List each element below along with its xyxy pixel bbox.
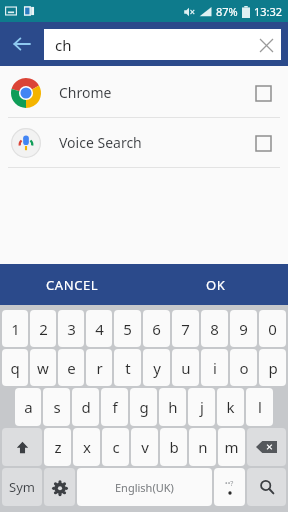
button[interactable]: h — [159, 388, 186, 426]
staticText: h — [168, 397, 178, 417]
button[interactable]: t — [114, 349, 141, 386]
button[interactable]: g — [130, 388, 157, 426]
button[interactable]: Voice Search — [0, 118, 288, 167]
button[interactable]: Backspace — [247, 428, 286, 466]
button[interactable]: Select Voice Search — [246, 126, 280, 160]
staticText: d — [81, 397, 91, 417]
button[interactable]: d — [72, 388, 99, 426]
staticText: f — [112, 397, 118, 417]
button[interactable]: q — [2, 349, 28, 386]
staticText: s — [53, 397, 61, 417]
staticText: r — [96, 358, 103, 378]
button[interactable]: o — [230, 349, 257, 386]
button[interactable]: z — [44, 428, 71, 466]
staticText: p — [268, 358, 278, 378]
button[interactable]: Select Chrome — [246, 76, 280, 110]
button[interactable]: ch — [44, 29, 281, 60]
staticText: 5 — [123, 319, 132, 339]
staticText: x — [83, 437, 91, 457]
button[interactable]: Chrome — [0, 68, 288, 117]
button[interactable]: e — [58, 349, 84, 386]
staticText: u — [181, 358, 191, 378]
staticText: j — [200, 397, 204, 417]
staticText: t — [125, 358, 131, 378]
staticText: 8 — [210, 319, 219, 339]
staticText: ••? — [225, 479, 234, 489]
staticText: e — [67, 358, 76, 378]
button[interactable]: m — [218, 428, 245, 466]
button[interactable]: a — [15, 388, 41, 426]
button[interactable]: 1 — [2, 310, 28, 347]
staticText: 2 — [39, 319, 48, 339]
staticText: 13:32 — [254, 4, 283, 19]
staticText: v — [141, 437, 149, 457]
button[interactable]: 4 — [86, 310, 112, 347]
button[interactable]: Back — [0, 22, 44, 66]
button[interactable]: x — [73, 428, 100, 466]
button[interactable]: 2 — [30, 310, 56, 347]
button[interactable]: CANCEL — [0, 264, 144, 305]
button[interactable]: r — [86, 349, 112, 386]
button[interactable]: i — [201, 349, 228, 386]
button[interactable]: u — [172, 349, 199, 386]
staticText: CANCEL — [46, 276, 99, 294]
button[interactable]: b — [160, 428, 187, 466]
button[interactable]: l — [246, 388, 273, 426]
button[interactable]: Search — [247, 468, 286, 506]
staticText: 0 — [268, 319, 277, 339]
button[interactable]: n — [189, 428, 216, 466]
staticText: a — [24, 397, 33, 417]
button[interactable]: v — [131, 428, 158, 466]
button[interactable]: Sym — [2, 468, 42, 506]
staticText: m — [224, 437, 239, 457]
button[interactable]: k — [217, 388, 244, 426]
button[interactable]: c — [102, 428, 129, 466]
button[interactable]: 3 — [58, 310, 84, 347]
button[interactable]: s — [43, 388, 70, 426]
staticText: 9 — [239, 319, 248, 339]
button[interactable]: Period — [214, 468, 245, 506]
staticText: o — [239, 358, 249, 378]
button[interactable]: j — [188, 388, 215, 426]
staticText: g — [139, 397, 149, 417]
staticText: b — [169, 437, 179, 457]
button[interactable]: f — [101, 388, 128, 426]
button[interactable]: 7 — [172, 310, 199, 347]
staticText: Sym — [9, 478, 35, 496]
staticText: n — [198, 437, 208, 457]
staticText: q — [10, 358, 20, 378]
staticText: OK — [206, 276, 226, 294]
button[interactable]: Shift — [2, 428, 42, 466]
staticText: z — [54, 437, 62, 457]
staticText: l — [258, 397, 262, 417]
button[interactable]: y — [143, 349, 170, 386]
staticText: k — [226, 397, 235, 417]
staticText: w — [37, 358, 49, 378]
staticText: 4 — [95, 319, 104, 339]
staticText: 6 — [152, 319, 161, 339]
button[interactable]: w — [30, 349, 56, 386]
staticText: 1 — [11, 319, 20, 339]
staticText: English(UK) — [115, 480, 174, 495]
staticText: ch — [55, 35, 72, 55]
button[interactable]: Clear search — [251, 30, 281, 60]
button[interactable]: 9 — [230, 310, 257, 347]
staticText: i — [213, 358, 217, 378]
staticText: 3 — [67, 319, 76, 339]
staticText: Chrome — [59, 83, 112, 102]
button[interactable]: p — [259, 349, 286, 386]
staticText: y — [153, 358, 161, 378]
button[interactable]: English(UK) — [77, 468, 212, 506]
staticText: Voice Search — [59, 133, 142, 152]
button[interactable]: Keyboard settings — [44, 468, 75, 506]
staticText: 7 — [181, 319, 190, 339]
button[interactable]: OK — [144, 264, 288, 305]
button[interactable]: 6 — [143, 310, 170, 347]
staticText: c — [112, 437, 120, 457]
staticText: 87% — [216, 4, 238, 19]
button[interactable]: 8 — [201, 310, 228, 347]
button[interactable]: 5 — [114, 310, 141, 347]
button[interactable]: 0 — [259, 310, 286, 347]
